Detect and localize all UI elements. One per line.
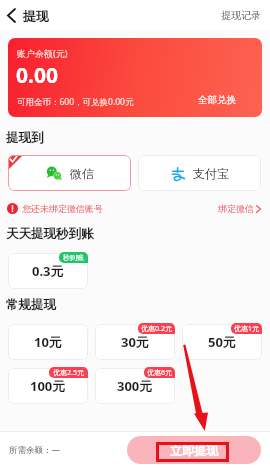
staticText: 常规提现 bbox=[6, 297, 56, 313]
staticText: 100元 bbox=[30, 377, 66, 395]
staticText: 30元 bbox=[121, 333, 149, 351]
staticText: 提现记录 bbox=[221, 9, 261, 22]
button[interactable]: 支付宝 bbox=[138, 155, 261, 191]
staticText: 0.00 bbox=[16, 61, 58, 90]
staticText: 支付宝 bbox=[193, 166, 229, 181]
button[interactable]: 100元 bbox=[8, 368, 88, 404]
staticText: 您还未绑定微信账号 bbox=[22, 203, 103, 214]
button[interactable]: 提现记录 bbox=[212, 3, 270, 28]
staticText: 优惠0.2元 bbox=[141, 324, 172, 334]
staticText: 优惠6元 bbox=[147, 368, 173, 378]
staticText: 微信 bbox=[70, 166, 94, 181]
staticText: 秒到账 bbox=[63, 253, 84, 262]
staticText: 优惠1元 bbox=[234, 324, 260, 334]
staticText: 账户余额(元) bbox=[17, 47, 68, 59]
button[interactable]: Back bbox=[2, 0, 20, 30]
button[interactable]: 50元 bbox=[182, 324, 262, 360]
button[interactable]: 微信 bbox=[8, 155, 131, 191]
staticText: 绑定微信 bbox=[218, 203, 254, 214]
staticText: 全部兑换 bbox=[198, 94, 236, 106]
staticText: 0.3元 bbox=[32, 262, 64, 280]
staticText: 提现到 bbox=[6, 130, 44, 146]
staticText: 优惠2.5元 bbox=[53, 368, 84, 378]
staticText: 所需余额：— bbox=[9, 444, 61, 456]
button[interactable]: 立即提现 bbox=[127, 436, 261, 464]
button[interactable]: 绑定微信 bbox=[218, 203, 261, 214]
staticText: 50元 bbox=[208, 333, 236, 351]
staticText: 10元 bbox=[34, 333, 62, 351]
staticText: 300元 bbox=[117, 377, 153, 395]
staticText: 提现 bbox=[23, 8, 49, 24]
staticText: 立即提现 bbox=[170, 443, 218, 458]
button[interactable]: 300元 bbox=[95, 368, 175, 404]
staticText: 可用金币：600，可兑换0.00元 bbox=[17, 96, 134, 108]
button[interactable]: 账户余额(元) bbox=[8, 38, 262, 117]
button[interactable]: 0.3元 bbox=[8, 253, 88, 289]
staticText: 天天提现秒到账 bbox=[6, 226, 94, 242]
button[interactable]: 全部兑换 bbox=[190, 89, 244, 111]
button[interactable]: 30元 bbox=[95, 324, 175, 360]
button[interactable]: 10元 bbox=[8, 324, 88, 360]
